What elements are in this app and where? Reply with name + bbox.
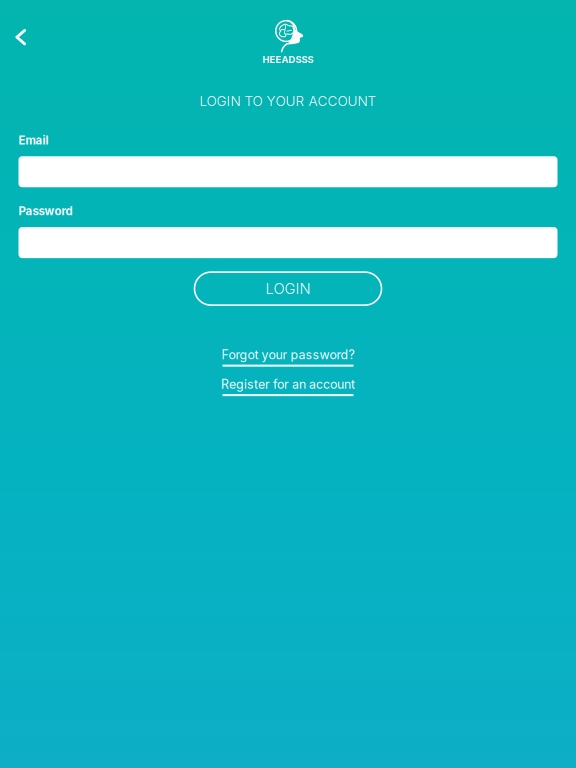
staticText: Forgot your password? [221,347,354,362]
button[interactable]: Register for an account [218,377,357,396]
staticText: LOGIN TO YOUR ACCOUNT [199,93,376,109]
staticText: Register for an account [221,377,355,392]
button[interactable]: LOGIN [194,272,381,305]
staticText: Password [18,204,72,218]
staticText: HEEADSSS [262,54,313,65]
button[interactable]: Back [0,15,44,61]
button[interactable]: Forgot your password? [218,347,357,367]
staticText: Email [18,133,48,147]
staticText: LOGIN [265,280,310,297]
